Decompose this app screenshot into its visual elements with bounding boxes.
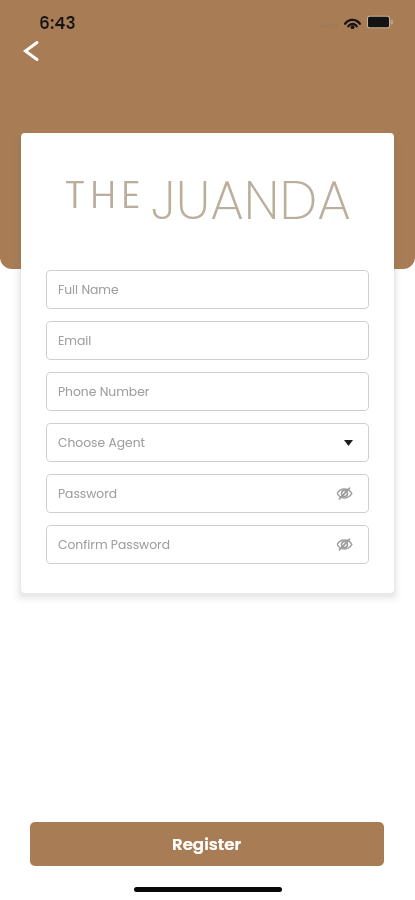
staticText: Phone Number (58, 383, 150, 400)
button[interactable]: Confirm Password (46, 525, 369, 564)
button[interactable]: Back (17, 37, 45, 65)
staticText: 6:43 (39, 11, 76, 35)
button[interactable]: Email (46, 321, 369, 360)
staticText: JUANDA (151, 163, 351, 238)
button[interactable]: Password (46, 474, 369, 513)
button[interactable]: Full Name (46, 270, 369, 309)
staticText: Register (172, 833, 242, 856)
staticText: Email (58, 332, 92, 349)
button[interactable]: Register (30, 822, 384, 866)
staticText: Choose Agent (58, 434, 146, 451)
button[interactable]: Choose Agent (46, 423, 369, 462)
staticText: Confirm Password (58, 536, 170, 553)
staticText: THE (65, 168, 146, 221)
staticText: Password (58, 485, 118, 502)
button[interactable]: Phone Number (46, 372, 369, 411)
staticText: Full Name (58, 281, 119, 298)
